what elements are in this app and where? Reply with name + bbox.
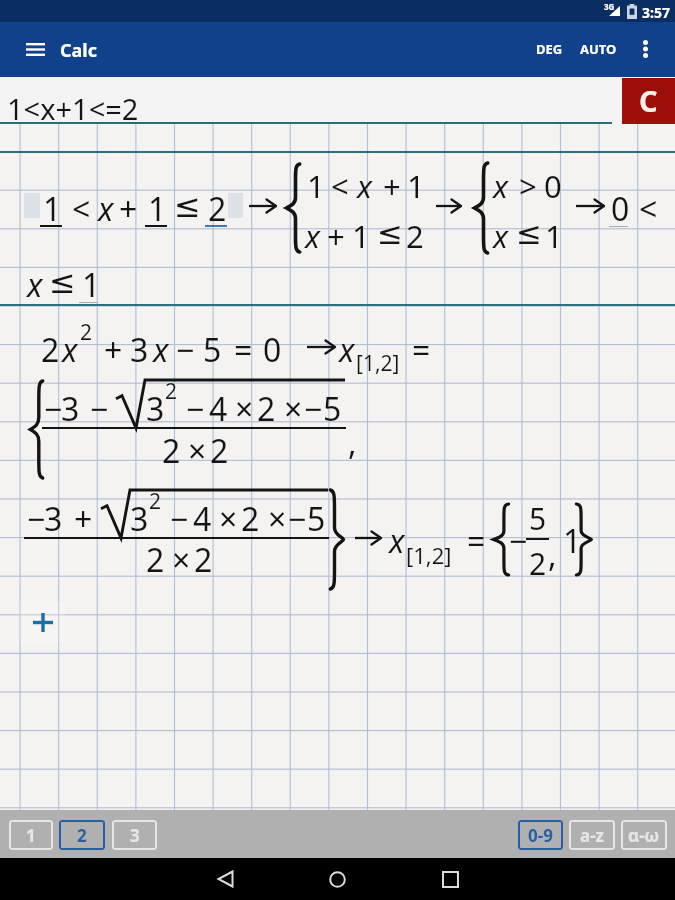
staticText: 1 xyxy=(545,215,563,257)
staticText: − xyxy=(186,387,205,431)
staticText: 3 xyxy=(130,824,140,847)
staticText: + xyxy=(383,165,401,207)
staticText: − xyxy=(170,497,189,541)
button[interactable]: α-ω xyxy=(621,820,667,850)
button[interactable]: 3 xyxy=(112,820,157,850)
staticText: 5 xyxy=(323,387,342,431)
staticText: 1 xyxy=(307,165,325,207)
staticText: x xyxy=(305,215,320,257)
staticText: = xyxy=(234,328,253,372)
staticText: = xyxy=(412,328,431,372)
staticText: × xyxy=(268,497,287,541)
button[interactable]: Home xyxy=(316,858,358,900)
staticText: x xyxy=(389,519,405,563)
staticText: 2 xyxy=(41,328,60,372)
staticText: ≤ xyxy=(377,215,403,251)
staticText: x xyxy=(153,328,169,372)
staticText: 2 xyxy=(80,318,93,347)
staticText: 1 xyxy=(352,215,370,257)
staticText: = xyxy=(467,519,486,563)
staticText: 3 xyxy=(130,328,149,372)
staticText: 1 xyxy=(26,824,36,847)
button[interactable]: AUTO xyxy=(572,32,624,66)
staticText: 1 xyxy=(407,165,425,207)
staticText: x xyxy=(357,165,372,207)
staticText: x xyxy=(493,215,508,257)
staticText: < xyxy=(72,187,91,231)
staticText: 1<x+1<=2 xyxy=(7,89,139,128)
staticText: 2 xyxy=(241,497,260,541)
staticText: 5 xyxy=(203,328,222,372)
staticText: > xyxy=(519,165,537,207)
staticText: 2 xyxy=(210,429,229,473)
button[interactable]: Back xyxy=(204,858,246,900)
staticText: 1 xyxy=(148,187,167,231)
staticText: 3 xyxy=(44,497,63,541)
staticText: × xyxy=(172,538,191,582)
staticText: ≤ xyxy=(174,187,201,224)
staticText: AUTO xyxy=(580,40,617,58)
staticText: + xyxy=(327,215,345,257)
staticText: 3 xyxy=(146,387,165,431)
staticText: 2 xyxy=(165,377,178,406)
staticText: C xyxy=(639,81,658,120)
staticText: 0 xyxy=(263,328,282,372)
staticText: × xyxy=(219,497,238,541)
staticText: 2 xyxy=(162,429,181,473)
staticText: + xyxy=(104,328,123,372)
staticText: 2 xyxy=(529,543,547,584)
staticText: 2 xyxy=(406,215,424,257)
button[interactable]: Open navigation menu xyxy=(13,33,57,66)
staticText: 2 xyxy=(194,538,213,582)
staticText: × xyxy=(188,429,207,473)
staticText: x xyxy=(339,328,355,372)
staticText: + xyxy=(74,497,93,541)
button[interactable]: More options xyxy=(628,32,662,66)
button[interactable]: Recent apps xyxy=(429,858,471,900)
staticText: − xyxy=(27,497,46,541)
button[interactable]: DEG xyxy=(527,32,571,66)
button[interactable]: C xyxy=(622,78,675,124)
staticText: , xyxy=(348,421,357,465)
staticText: 1 xyxy=(43,187,62,231)
staticText: × xyxy=(284,387,303,431)
staticText: x xyxy=(493,165,508,207)
staticText: 3:57 xyxy=(642,3,670,22)
staticText: + xyxy=(119,187,138,231)
staticText: 0 xyxy=(544,165,562,207)
button[interactable]: a-z xyxy=(569,820,615,850)
staticText: 2 xyxy=(257,387,276,431)
staticText: x xyxy=(27,263,43,307)
staticText: 5 xyxy=(529,498,547,539)
staticText: − xyxy=(509,519,528,563)
staticText: − xyxy=(304,387,323,431)
staticText: − xyxy=(44,387,63,431)
staticText: × xyxy=(235,387,254,431)
staticText: 0-9 xyxy=(528,824,553,847)
button[interactable]: 1 xyxy=(9,820,53,850)
staticText: 2 xyxy=(146,538,165,582)
staticText: 5 xyxy=(307,497,326,541)
staticText: 2 xyxy=(208,187,227,231)
staticText: 3 xyxy=(130,497,149,541)
staticText: [1,2] xyxy=(406,540,452,570)
staticText: [1,2] xyxy=(356,349,400,378)
staticText: − xyxy=(288,497,307,541)
staticText: a-z xyxy=(580,824,605,847)
staticText: − xyxy=(176,328,195,372)
staticText: DEG xyxy=(536,40,563,58)
staticText: 4 xyxy=(193,497,212,541)
button[interactable]: 2 xyxy=(59,820,105,850)
staticText: − xyxy=(90,387,109,431)
staticText: α-ω xyxy=(628,824,660,847)
staticText: , xyxy=(548,533,557,577)
staticText: < xyxy=(331,165,349,207)
button[interactable]: Add new expression xyxy=(26,606,59,639)
staticText: x xyxy=(62,328,78,372)
staticText: ≤ xyxy=(49,263,76,300)
button[interactable]: 0-9 xyxy=(518,820,563,850)
staticText: ≤ xyxy=(516,215,542,251)
staticText: < xyxy=(639,187,658,231)
staticText: 2 xyxy=(149,487,162,516)
staticText: 3G xyxy=(604,1,615,12)
